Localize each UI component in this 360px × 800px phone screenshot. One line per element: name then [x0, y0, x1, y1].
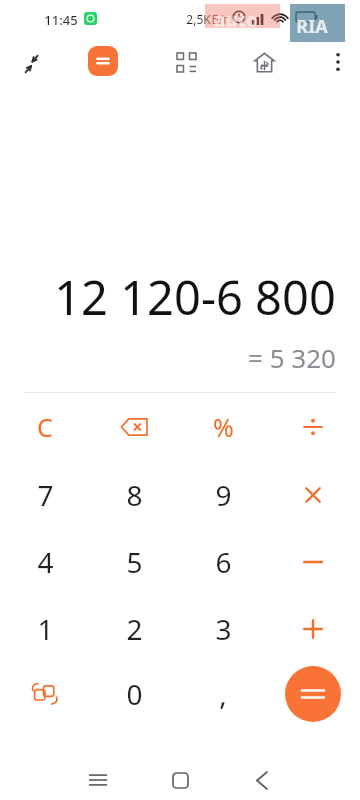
- button[interactable]: Back: [238, 756, 286, 800]
- button[interactable]: Plus: [277, 599, 349, 659]
- button[interactable]: Home: [156, 756, 204, 800]
- staticText: auto: [214, 7, 258, 33]
- button[interactable]: 5: [98, 532, 170, 592]
- button[interactable]: Divide: [277, 397, 349, 457]
- staticText: 0: [126, 675, 143, 713]
- staticText: 4: [37, 543, 54, 581]
- button[interactable]: Minus: [277, 532, 349, 592]
- staticText: 11:45: [44, 11, 78, 29]
- button[interactable]: 8: [98, 465, 170, 525]
- button[interactable]: Converter: [9, 664, 81, 724]
- button[interactable]: %: [187, 397, 259, 457]
- staticText: 1: [37, 610, 54, 648]
- staticText: 7: [37, 476, 54, 514]
- button[interactable]: History: [168, 44, 204, 80]
- button[interactable]: Backspace: [98, 397, 170, 457]
- staticText: 2,5K: [186, 11, 211, 27]
- button[interactable]: C: [9, 397, 81, 457]
- button[interactable]: 2: [98, 599, 170, 659]
- button[interactable]: More options: [320, 44, 356, 80]
- staticText: ,: [219, 675, 227, 713]
- staticText: %: [213, 410, 234, 444]
- staticText: 12 120-6 800: [54, 265, 336, 329]
- button[interactable]: Currency: [246, 44, 282, 80]
- staticText: 6: [215, 543, 232, 581]
- staticText: = 5 320: [248, 340, 336, 375]
- staticText: 9: [215, 476, 232, 514]
- button[interactable]: 4: [9, 532, 81, 592]
- button[interactable]: ,: [187, 664, 259, 724]
- button[interactable]: Calculator: [88, 46, 118, 76]
- staticText: 3: [215, 610, 232, 648]
- button[interactable]: Collapse: [12, 44, 52, 84]
- button[interactable]: 0: [98, 664, 170, 724]
- staticText: 5: [126, 543, 143, 581]
- button[interactable]: 3: [187, 599, 259, 659]
- staticText: 8: [126, 476, 143, 514]
- staticText: RIA: [296, 14, 328, 39]
- button[interactable]: Equals: [285, 666, 341, 722]
- button[interactable]: 9: [187, 465, 259, 525]
- button[interactable]: 7: [9, 465, 81, 525]
- staticText: Б/г: [211, 11, 229, 27]
- button[interactable]: Multiply: [277, 465, 349, 525]
- button[interactable]: 6: [187, 532, 259, 592]
- staticText: C: [37, 410, 53, 444]
- button[interactable]: Recents: [74, 756, 122, 800]
- button[interactable]: 1: [9, 599, 81, 659]
- staticText: 2: [126, 610, 143, 648]
